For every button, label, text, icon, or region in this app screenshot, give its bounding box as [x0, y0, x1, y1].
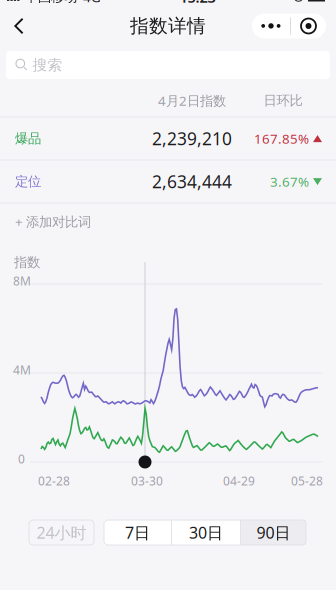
staticText: 4G: [83, 0, 101, 6]
staticText: 定位: [15, 173, 41, 190]
button[interactable]: 搜索: [6, 51, 330, 79]
staticText: 指数详情: [130, 14, 206, 37]
staticText: 90日: [256, 522, 290, 543]
button[interactable]: 30日: [172, 520, 240, 545]
staticText: 日环比: [263, 92, 302, 109]
staticText: 30日: [189, 522, 223, 543]
staticText: 2,634,444: [152, 170, 232, 193]
staticText: 0: [18, 451, 25, 467]
button[interactable]: + 添加对比词: [0, 203, 336, 239]
staticText: 2,239,210: [152, 127, 232, 150]
staticText: 8M: [13, 273, 31, 289]
staticText: 02-28: [38, 473, 70, 489]
staticText: 03-30: [131, 473, 163, 489]
staticText: 4M: [13, 362, 31, 378]
staticText: 15:23: [179, 0, 215, 7]
staticText: 167.85%: [254, 130, 309, 147]
button[interactable]: 24小时: [29, 520, 94, 545]
staticText: 05-28: [291, 473, 323, 489]
staticText: 指数: [14, 254, 40, 270]
staticText: + 添加对比词: [15, 213, 91, 230]
staticText: 爆品: [15, 130, 41, 147]
staticText: 4月2日指数: [158, 92, 226, 109]
staticText: 搜索: [32, 56, 62, 74]
button[interactable]: Back: [0, 9, 38, 43]
button[interactable]: 7日: [104, 520, 171, 545]
button[interactable]: More: [252, 13, 290, 38]
staticText: 04-29: [223, 473, 255, 489]
staticText: 24小时: [36, 522, 86, 543]
staticText: 3.67%: [270, 173, 309, 190]
staticText: 中国移动: [25, 0, 77, 5]
button[interactable]: Close: [291, 13, 326, 38]
staticText: 7日: [125, 522, 150, 543]
button[interactable]: 90日: [241, 520, 306, 545]
